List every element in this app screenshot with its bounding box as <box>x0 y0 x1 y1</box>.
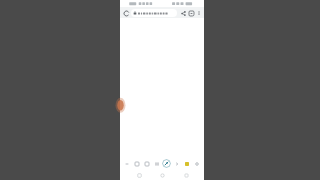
button[interactable]: Forward <box>143 160 151 168</box>
button[interactable]: Menu <box>123 160 131 168</box>
button[interactable] <box>131 9 177 17</box>
button[interactable]: Back <box>134 170 144 180</box>
button[interactable]: Share <box>179 9 187 17</box>
button[interactable]: Reload <box>122 9 130 17</box>
button[interactable]: Recents <box>181 170 191 180</box>
button[interactable]: Settings <box>193 160 201 168</box>
button[interactable]: Back <box>133 160 141 168</box>
button[interactable]: Tabs <box>187 9 195 17</box>
button[interactable]: Selected tool <box>162 159 171 168</box>
button[interactable]: List <box>153 160 161 168</box>
button[interactable]: Highlight <box>183 160 191 168</box>
button[interactable]: Home <box>157 170 167 180</box>
button[interactable]: Next <box>173 160 181 168</box>
button[interactable]: More options <box>195 9 202 16</box>
